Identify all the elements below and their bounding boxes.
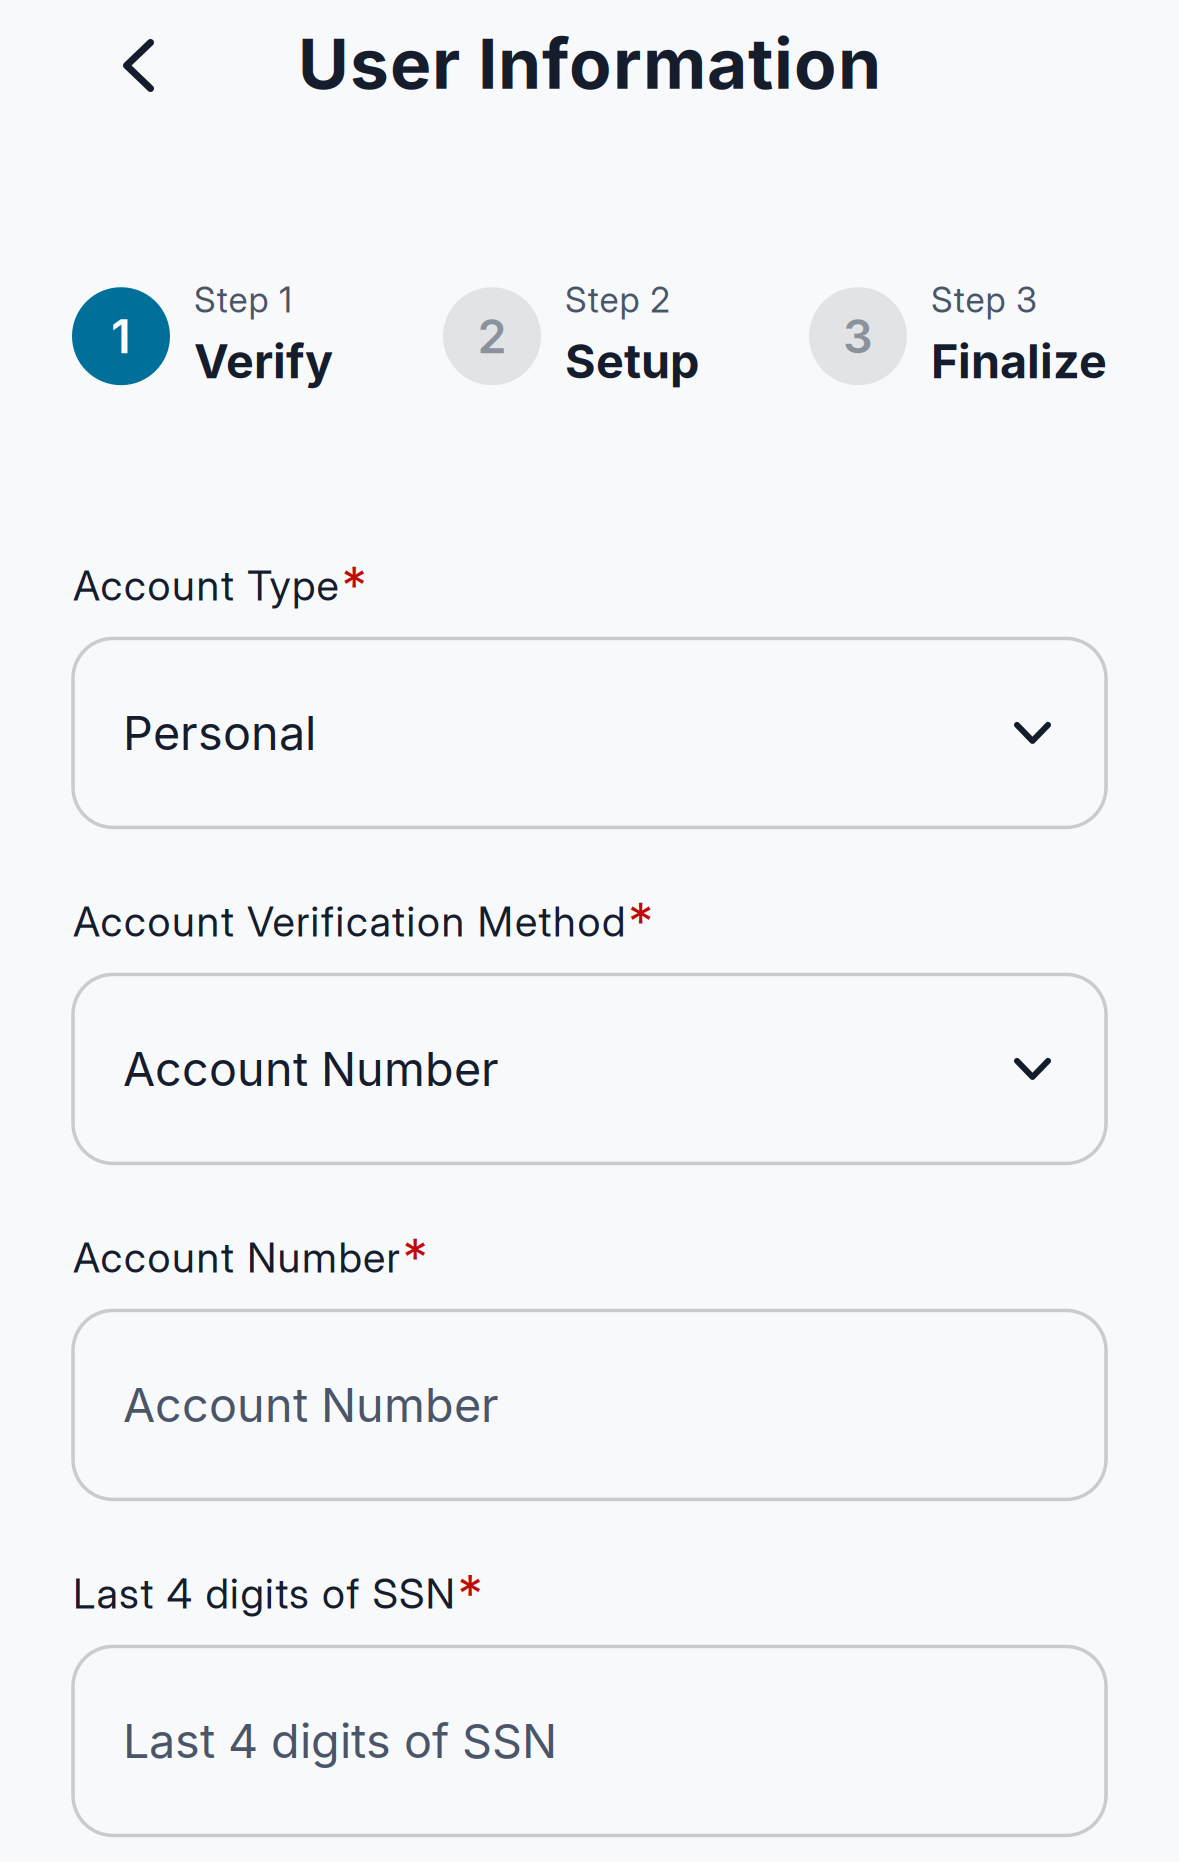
staticText: Account Number xyxy=(73,1232,399,1282)
staticText: Account Type xyxy=(73,560,338,610)
staticText: Account Number xyxy=(123,1377,499,1433)
staticText: 3 xyxy=(843,308,873,364)
staticText: Account Verification Method xyxy=(73,896,625,946)
staticText: Last 4 digits of SSN xyxy=(123,1713,557,1769)
staticText: * xyxy=(457,1563,482,1624)
staticText: 1 xyxy=(111,308,131,364)
staticText: Verify xyxy=(194,333,333,389)
staticText: Finalize xyxy=(931,333,1107,389)
button[interactable]: Personal xyxy=(73,638,1106,827)
button[interactable]: Account Number xyxy=(73,974,1106,1163)
staticText: Setup xyxy=(565,333,699,389)
button[interactable]: 1 xyxy=(72,279,333,389)
staticText: Account Number xyxy=(123,1041,499,1097)
button[interactable]: Last 4 digits of SSN xyxy=(73,1646,1106,1835)
staticText: * xyxy=(628,891,653,952)
button[interactable]: 2 xyxy=(443,279,699,389)
staticText: Last 4 digits of SSN xyxy=(73,1568,454,1618)
staticText: Step 3 xyxy=(931,279,1037,321)
button[interactable]: 3 xyxy=(809,279,1107,389)
staticText: Step 1 xyxy=(194,279,292,321)
staticText: User Information xyxy=(298,22,881,105)
staticText: Step 2 xyxy=(565,279,670,321)
staticText: * xyxy=(402,1227,427,1288)
staticText: * xyxy=(341,555,366,616)
button[interactable]: Back xyxy=(0,15,196,112)
staticText: 2 xyxy=(477,308,506,364)
staticText: Personal xyxy=(123,705,316,761)
button[interactable]: Account Number xyxy=(73,1310,1106,1499)
